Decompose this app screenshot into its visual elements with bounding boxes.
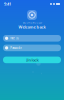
button[interactable]: Face ID <box>3 35 61 42</box>
staticText: 9:41 <box>4 1 11 7</box>
staticText: Passcode <box>10 46 22 50</box>
staticText: Unlock <box>25 57 38 62</box>
staticText: SECURE ACCESS <box>22 21 41 24</box>
button[interactable]: Passcode <box>3 45 61 51</box>
staticText: Welcome back <box>18 24 45 30</box>
staticText: Face ID <box>10 36 19 40</box>
button[interactable]: Unlock <box>3 57 61 63</box>
